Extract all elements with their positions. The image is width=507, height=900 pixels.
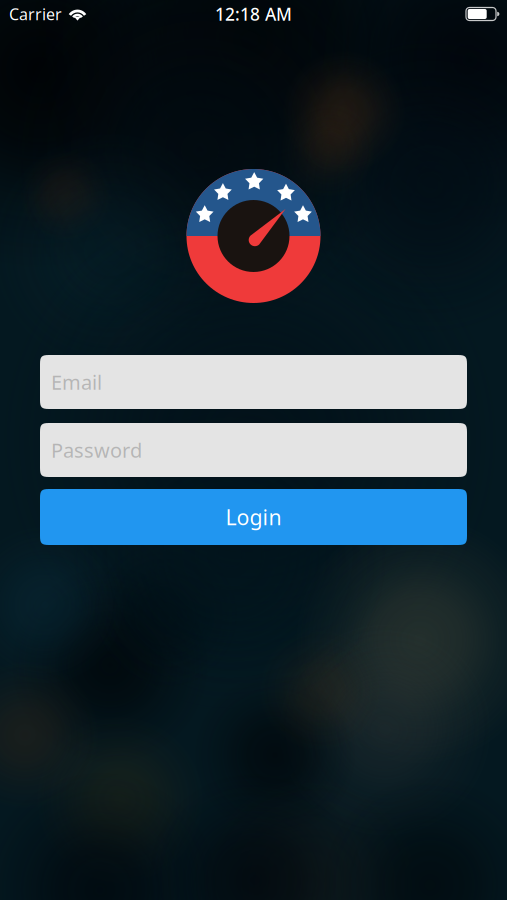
staticText: Password [51, 437, 142, 463]
staticText: Carrier [9, 3, 62, 25]
button[interactable]: Email [40, 355, 467, 409]
staticText: Email [51, 369, 102, 395]
button[interactable]: Login [40, 489, 467, 545]
staticText: Login [225, 503, 281, 531]
button[interactable]: Password [40, 423, 467, 477]
staticText: 12:18 AM [215, 2, 292, 25]
